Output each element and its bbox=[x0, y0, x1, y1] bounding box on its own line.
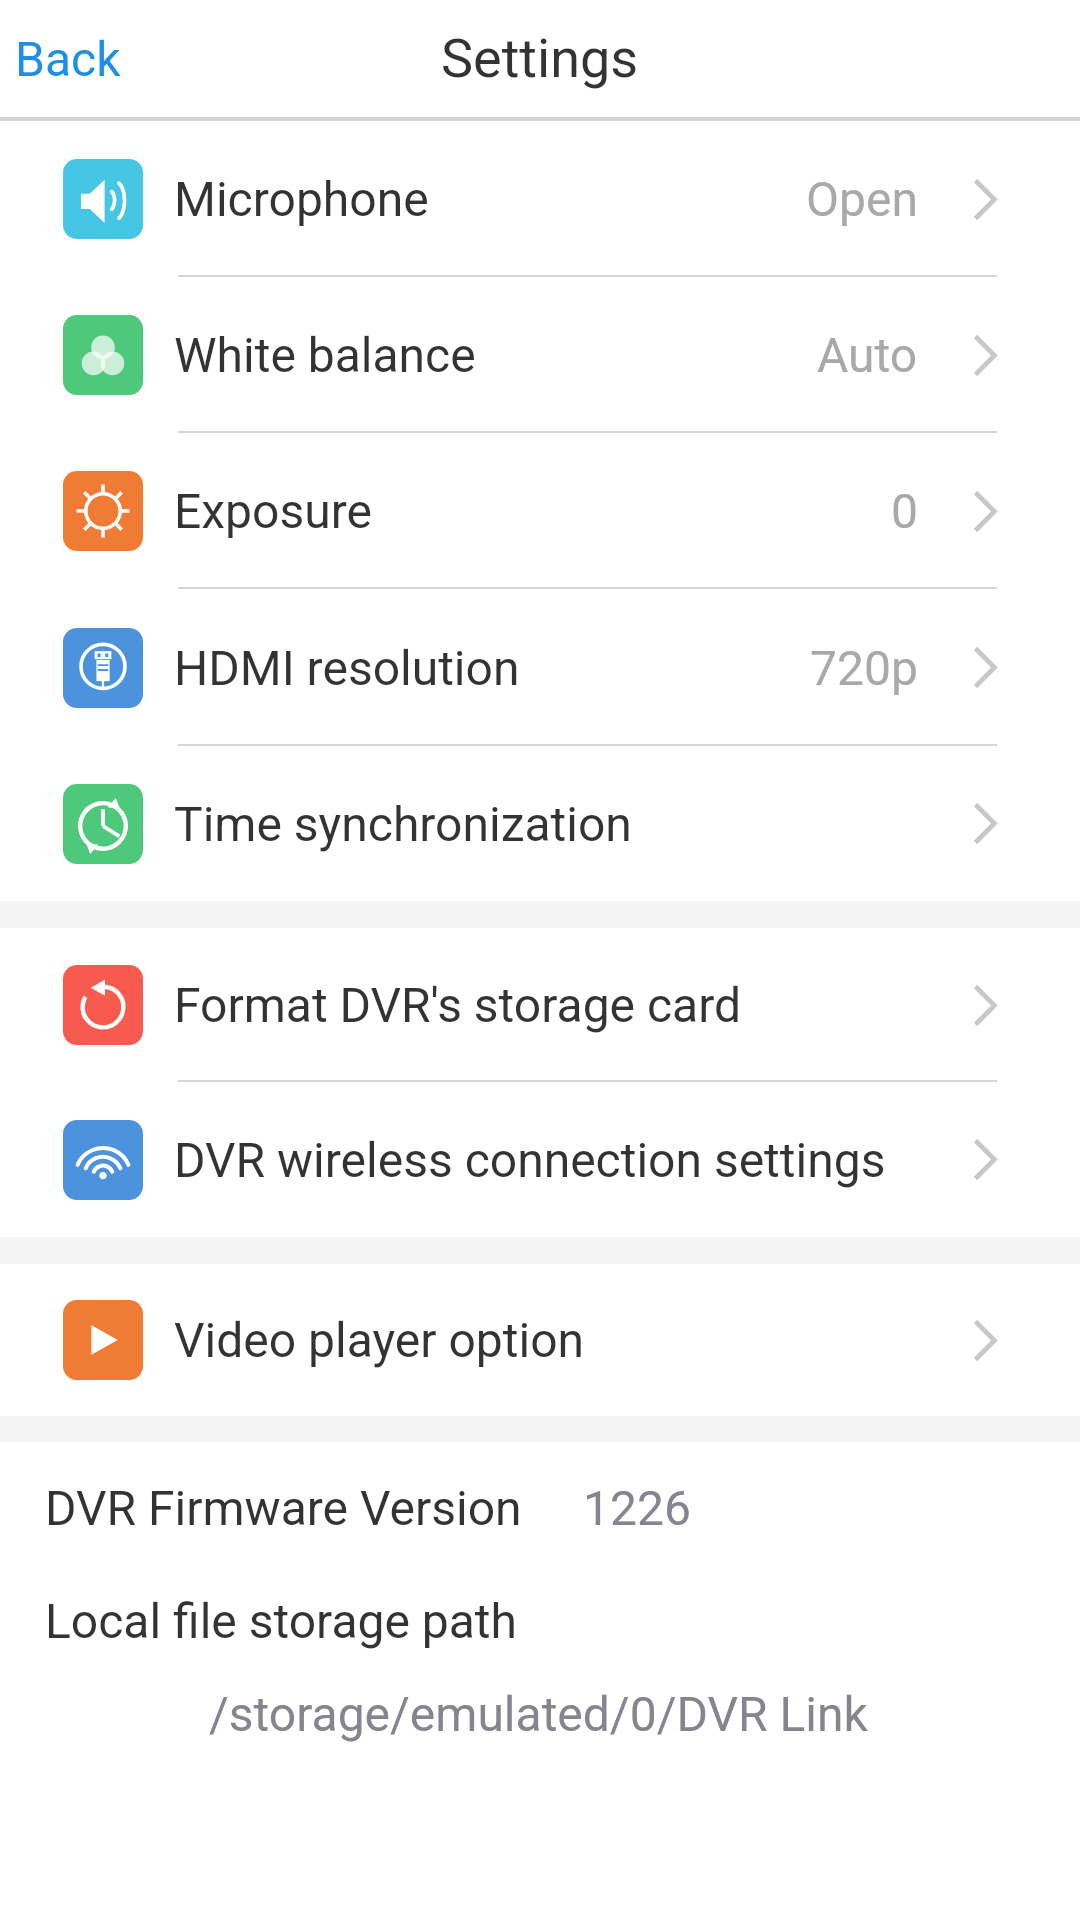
other: Format DVR's storage card bbox=[63, 965, 143, 1045]
staticText: Back bbox=[15, 31, 121, 87]
staticText: Local file storage path bbox=[45, 1593, 518, 1649]
button[interactable]: Video player option bbox=[0, 1264, 1080, 1416]
staticText: Open bbox=[806, 171, 918, 227]
button[interactable]: Time synchronization bbox=[0, 746, 1080, 901]
other: White balance bbox=[63, 315, 143, 395]
staticText: White balance bbox=[174, 327, 476, 383]
button[interactable]: Format DVR's storage card bbox=[0, 928, 1080, 1082]
other: Exposure bbox=[63, 471, 143, 551]
staticText: Video player option bbox=[174, 1312, 585, 1368]
other: Time synchronization bbox=[63, 784, 143, 864]
other: HDMI resolution bbox=[63, 628, 143, 708]
button[interactable]: Microphone bbox=[0, 121, 1080, 277]
staticText: Time synchronization bbox=[174, 796, 632, 852]
staticText: Format DVR's storage card bbox=[174, 977, 742, 1033]
other: DVR wireless connection settings bbox=[63, 1120, 143, 1200]
staticText: 0 bbox=[891, 483, 918, 539]
button[interactable]: DVR wireless connection settings bbox=[0, 1082, 1080, 1237]
staticText: Auto bbox=[817, 327, 918, 383]
button[interactable]: Exposure bbox=[0, 433, 1080, 589]
other: Video player option bbox=[63, 1300, 143, 1380]
staticText: Exposure bbox=[174, 483, 372, 539]
button[interactable]: White balance bbox=[0, 277, 1080, 433]
button[interactable]: Back bbox=[0, 0, 151, 117]
staticText: 720p bbox=[810, 640, 918, 696]
staticText: Settings bbox=[441, 27, 639, 90]
staticText: HDMI resolution bbox=[174, 640, 520, 696]
staticText: DVR wireless connection settings bbox=[174, 1132, 886, 1188]
staticText: Microphone bbox=[174, 171, 429, 227]
other: Microphone bbox=[63, 159, 143, 239]
staticText: 1226 bbox=[583, 1480, 691, 1536]
staticText: /storage/emulated/0/DVR Link bbox=[209, 1686, 868, 1742]
staticText: DVR Firmware Version bbox=[45, 1480, 522, 1536]
button[interactable]: HDMI resolution bbox=[0, 589, 1080, 746]
